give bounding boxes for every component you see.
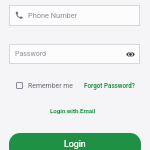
button[interactable]: Phone Number	[9, 5, 140, 26]
button[interactable]: Login with Email	[50, 105, 96, 115]
button[interactable]: Show password	[125, 49, 135, 59]
button[interactable]: Password	[9, 44, 140, 64]
staticText: Login with Email	[50, 107, 96, 114]
staticText: Login	[64, 139, 86, 149]
button[interactable]: Forgot Password?	[84, 81, 135, 90]
staticText: Remember me	[28, 82, 73, 90]
button[interactable]: Remember me	[16, 81, 73, 90]
button[interactable]: Login	[9, 133, 141, 150]
staticText: Forgot Password?	[84, 82, 135, 89]
staticText: Password	[15, 50, 46, 58]
staticText: Phone Number	[28, 11, 78, 20]
